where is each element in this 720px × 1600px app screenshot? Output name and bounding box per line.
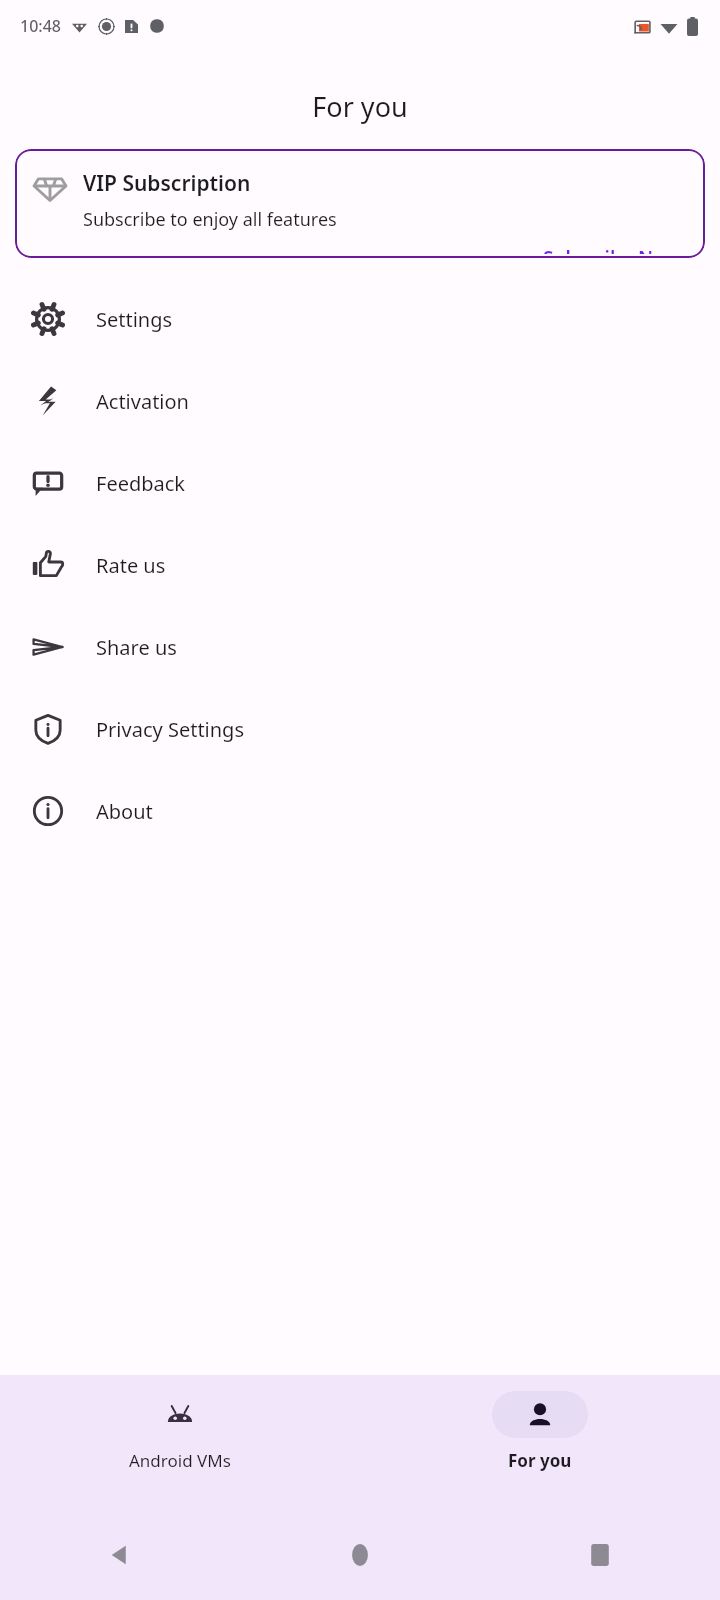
staticText: 10:48: [20, 15, 61, 37]
staticText: Android VMs: [129, 1449, 231, 1472]
button[interactable]: Privacy Settings: [0, 688, 720, 770]
button[interactable]: Home: [330, 1525, 390, 1585]
staticText: Settings: [96, 306, 173, 333]
staticText: Subscribe to enjoy all features: [83, 207, 337, 232]
staticText: Feedback: [96, 470, 186, 497]
button[interactable]: Recents: [570, 1525, 630, 1585]
staticText: Rate us: [96, 552, 166, 579]
button[interactable]: Activation: [0, 360, 720, 442]
button[interactable]: Back: [90, 1525, 150, 1585]
button[interactable]: For you: [360, 1375, 720, 1472]
staticText: For you: [312, 88, 408, 125]
button[interactable]: About: [0, 770, 720, 852]
button[interactable]: Share us: [0, 606, 720, 688]
staticText: VIP Subscription: [83, 169, 251, 198]
staticText: For you: [508, 1449, 572, 1472]
staticText: Share us: [96, 634, 177, 661]
button[interactable]: Android VMs: [0, 1375, 360, 1472]
button[interactable]: Rate us: [0, 524, 720, 606]
staticText: Subscribe Now: [543, 245, 681, 254]
button[interactable]: Subscribe Now: [539, 241, 685, 258]
button[interactable]: Settings: [0, 278, 720, 360]
button[interactable]: Feedback: [0, 442, 720, 524]
staticText: About: [96, 798, 153, 825]
staticText: Activation: [96, 388, 189, 415]
staticText: Privacy Settings: [96, 716, 244, 743]
button[interactable]: VIP Subscription: [15, 149, 705, 258]
